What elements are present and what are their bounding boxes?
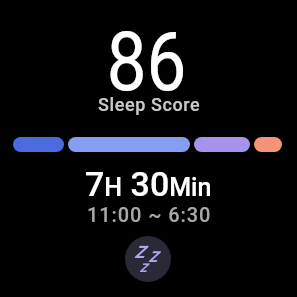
staticText: Z bbox=[140, 261, 148, 275]
staticText: 7H 30Min bbox=[85, 164, 212, 204]
staticText: 11:00 ~ 6:30 bbox=[87, 203, 212, 226]
staticText: Z bbox=[135, 242, 146, 262]
button[interactable]: Z bbox=[125, 236, 171, 282]
staticText: Sleep Score bbox=[98, 94, 201, 115]
staticText: Z bbox=[149, 248, 158, 266]
staticText: 86 bbox=[107, 15, 187, 110]
